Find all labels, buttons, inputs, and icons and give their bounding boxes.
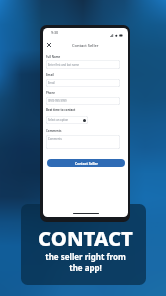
button[interactable]: Select an option — [46, 116, 88, 124]
staticText: Select an option — [48, 118, 69, 122]
staticText: Contact Seller — [72, 43, 99, 48]
staticText: 9:30 — [51, 30, 59, 35]
button[interactable]: Close — [44, 40, 54, 50]
staticText: the seller right from the app! — [45, 251, 126, 273]
button[interactable]: (999) 999-9999 — [46, 97, 120, 105]
staticText: Email — [46, 73, 54, 77]
staticText: Contact Seller — [75, 161, 98, 165]
staticText: Comments — [48, 137, 62, 141]
staticText: CONTACT — [38, 224, 133, 252]
staticText: Best time to contact — [46, 108, 76, 112]
button[interactable]: Comments — [46, 135, 120, 149]
staticText: Full Name — [46, 55, 61, 59]
staticText: Comments — [46, 129, 62, 133]
button[interactable]: Contact Seller — [47, 159, 125, 167]
button[interactable]: Enter first and last name — [46, 60, 120, 69]
staticText: (999) 999-9999 — [48, 99, 67, 103]
staticText: Phone — [46, 91, 55, 95]
staticText: Email — [48, 81, 55, 85]
staticText: Enter first and last name — [48, 63, 80, 67]
button[interactable]: Email — [46, 79, 120, 87]
